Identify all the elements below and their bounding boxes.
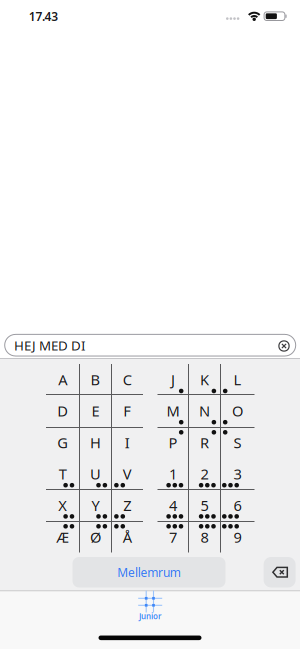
staticText: 8 — [200, 527, 208, 547]
staticText: 4 — [169, 496, 177, 515]
staticText: K — [200, 370, 209, 389]
staticText: HEJ MED DI — [14, 336, 86, 354]
button[interactable]: 3 — [220, 458, 254, 489]
button[interactable]: A — [46, 364, 79, 394]
staticText: E — [91, 401, 99, 421]
staticText: N — [199, 401, 210, 421]
staticText: A — [58, 370, 67, 389]
button[interactable]: Ø — [79, 521, 111, 552]
button[interactable]: 2 — [188, 458, 220, 489]
staticText: Y — [91, 496, 99, 515]
staticText: 17.43 — [29, 8, 58, 24]
button[interactable]: Æ — [46, 521, 79, 552]
button[interactable]: U — [79, 458, 111, 489]
staticText: M — [166, 401, 179, 421]
staticText: Z — [123, 496, 131, 515]
staticText: 1 — [169, 464, 177, 484]
button[interactable]: L — [220, 364, 254, 394]
button[interactable]: S — [220, 427, 254, 458]
staticText: Æ — [56, 527, 69, 547]
button[interactable]: 5 — [188, 489, 220, 521]
button[interactable]: 8 — [188, 521, 220, 552]
button[interactable]: T — [46, 458, 79, 489]
staticText: F — [123, 401, 131, 421]
button[interactable]: E — [79, 394, 111, 427]
staticText: S — [233, 433, 241, 452]
staticText: 6 — [233, 496, 241, 515]
staticText: 9 — [233, 527, 241, 547]
button[interactable]: D — [46, 394, 79, 427]
button[interactable]: Ryd tekst — [275, 337, 293, 355]
staticText: 5 — [200, 496, 208, 515]
button[interactable]: Z — [111, 489, 143, 521]
button[interactable]: 1 — [157, 458, 188, 489]
button[interactable]: F — [111, 394, 143, 427]
button[interactable]: O — [220, 394, 254, 427]
button[interactable]: K — [188, 364, 220, 394]
button[interactable]: V — [111, 458, 143, 489]
staticText: Å — [123, 527, 132, 547]
button[interactable]: Junior — [118, 588, 182, 622]
button[interactable]: X — [46, 489, 79, 521]
staticText: R — [200, 433, 209, 452]
staticText: J — [171, 370, 175, 389]
staticText: X — [58, 496, 67, 515]
button[interactable]: M — [157, 394, 188, 427]
staticText: L — [233, 370, 241, 389]
staticText: C — [123, 370, 132, 389]
button[interactable]: I — [111, 427, 143, 458]
button[interactable]: C — [111, 364, 143, 394]
staticText: D — [57, 401, 68, 421]
button[interactable]: 6 — [220, 489, 254, 521]
staticText: Ø — [90, 527, 101, 547]
button[interactable]: Slet — [264, 557, 296, 587]
staticText: I — [125, 433, 130, 452]
button[interactable]: 7 — [157, 521, 188, 552]
button[interactable]: Å — [111, 521, 143, 552]
button[interactable]: 9 — [220, 521, 254, 552]
staticText: 7 — [169, 527, 177, 547]
staticText: V — [123, 464, 132, 484]
button[interactable]: 4 — [157, 489, 188, 521]
staticText: 3 — [233, 464, 241, 484]
button[interactable]: B — [79, 364, 111, 394]
staticText: U — [90, 464, 101, 484]
staticText: T — [59, 464, 67, 484]
staticText: B — [90, 370, 100, 389]
staticText: 2 — [200, 464, 208, 484]
button[interactable]: Y — [79, 489, 111, 521]
button[interactable]: P — [157, 427, 188, 458]
staticText: P — [168, 433, 177, 452]
staticText: Junior — [139, 611, 161, 621]
staticText: Mellemrum — [117, 564, 181, 580]
staticText: G — [57, 433, 68, 452]
button[interactable]: Mellemrum — [72, 557, 225, 587]
button[interactable]: G — [46, 427, 79, 458]
button[interactable]: J — [157, 364, 188, 394]
button[interactable]: N — [188, 394, 220, 427]
button[interactable]: R — [188, 427, 220, 458]
staticText: H — [90, 433, 101, 452]
staticText: O — [232, 401, 243, 421]
button[interactable]: H — [79, 427, 111, 458]
